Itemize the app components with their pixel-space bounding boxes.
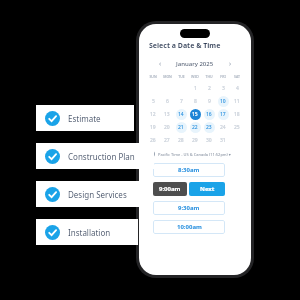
staticText: ‹ <box>159 59 162 69</box>
staticText: 18 <box>234 111 240 118</box>
staticText: Pacific Time - US & Canada (11:52pm) ▾ <box>158 152 231 157</box>
staticText: 26 <box>150 137 156 144</box>
staticText: › <box>229 59 232 69</box>
button[interactable]: 8:30am <box>153 163 225 177</box>
button[interactable]: 17 <box>217 108 229 120</box>
button[interactable]: Previous month <box>155 59 165 69</box>
staticText: 8:30am <box>178 166 200 174</box>
button[interactable]: 30 <box>203 134 215 146</box>
staticText: Construction Plan <box>68 151 135 162</box>
button[interactable]: 22 <box>189 121 201 133</box>
button[interactable]: Estimate <box>36 105 134 131</box>
button[interactable]: 6 <box>161 95 173 107</box>
staticText: 31 <box>220 137 226 144</box>
staticText: 16 <box>206 111 212 118</box>
staticText: January 2025 <box>176 60 214 68</box>
staticText: Select a Date & Time <box>149 41 221 51</box>
staticText: 22 <box>192 124 198 131</box>
button[interactable]: 25 <box>231 121 243 133</box>
staticText: 19 <box>150 124 156 131</box>
staticText: 27 <box>164 137 170 144</box>
staticText: 6 <box>166 98 169 105</box>
staticText: SUN <box>149 74 157 79</box>
staticText: 10:00am <box>177 223 202 231</box>
button[interactable]: Installation <box>36 219 138 245</box>
staticText: 28 <box>178 137 184 144</box>
staticText: 17 <box>220 111 226 118</box>
button[interactable]: 21 <box>175 121 187 133</box>
staticText: 3 <box>222 85 225 92</box>
button[interactable]: 31 <box>217 134 229 146</box>
button[interactable]: 26 <box>147 134 159 146</box>
button[interactable]: 10 <box>217 95 229 107</box>
button[interactable]: 28 <box>175 134 187 146</box>
staticText: 14 <box>178 111 184 118</box>
staticText: 21 <box>178 124 184 131</box>
button[interactable]: 12 <box>147 108 159 120</box>
button[interactable]: 9:00am <box>153 182 187 196</box>
button[interactable]: 10:00am <box>153 220 225 234</box>
staticText: MON <box>163 74 172 79</box>
button[interactable]: 19 <box>147 121 159 133</box>
staticText: 5 <box>152 98 155 105</box>
staticText: TUE <box>178 74 185 79</box>
staticText: 25 <box>234 124 240 131</box>
staticText: Design Services <box>68 189 127 200</box>
button[interactable]: 29 <box>189 134 201 146</box>
button[interactable]: 16 <box>203 108 215 120</box>
staticText: SAT <box>234 74 240 79</box>
button[interactable]: 23 <box>203 121 215 133</box>
button[interactable]: 3 <box>217 82 229 94</box>
staticText: Estimate <box>68 113 101 124</box>
staticText: 20 <box>164 124 170 131</box>
staticText: 8 <box>194 98 197 105</box>
button[interactable]: 13 <box>161 108 173 120</box>
button[interactable]: 9:30am <box>153 201 225 215</box>
staticText: 29 <box>192 137 198 144</box>
staticText: WED <box>191 74 199 79</box>
staticText: 23 <box>206 124 212 131</box>
button[interactable]: 8 <box>189 95 201 107</box>
button[interactable]: 14 <box>175 108 187 120</box>
staticText: 9 <box>208 98 211 105</box>
staticText: 30 <box>206 137 212 144</box>
staticText: 15 <box>192 111 198 118</box>
button[interactable]: Next <box>189 182 225 196</box>
button[interactable]: 18 <box>231 108 243 120</box>
button[interactable]: Construction Plan <box>36 143 154 169</box>
staticText: THU <box>205 74 213 79</box>
button[interactable]: 1 <box>189 82 201 94</box>
staticText: 12 <box>150 111 156 118</box>
staticText: 4 <box>236 85 239 92</box>
staticText: Installation <box>68 227 111 238</box>
button[interactable]: Pacific Time - US & Canada (11:52pm) ▾ <box>149 151 251 157</box>
button[interactable]: 24 <box>217 121 229 133</box>
button[interactable]: 2 <box>203 82 215 94</box>
button[interactable]: 4 <box>231 82 243 94</box>
button[interactable]: 27 <box>161 134 173 146</box>
staticText: 9:00am <box>159 185 181 193</box>
button[interactable]: 15 <box>189 108 201 120</box>
staticText: 24 <box>220 124 226 131</box>
staticText: 1 <box>194 85 197 92</box>
button[interactable]: 11 <box>231 95 243 107</box>
button[interactable]: 5 <box>147 95 159 107</box>
staticText: 13 <box>164 111 170 118</box>
staticText: 7 <box>180 98 183 105</box>
button[interactable]: Design Services <box>36 181 144 207</box>
staticText: 11 <box>234 98 240 105</box>
staticText: 9:30am <box>178 204 200 212</box>
button[interactable]: 20 <box>161 121 173 133</box>
staticText: 2 <box>208 85 211 92</box>
staticText: 10 <box>220 98 226 105</box>
button[interactable]: 9 <box>203 95 215 107</box>
button[interactable]: 7 <box>175 95 187 107</box>
staticText: FRI <box>220 74 226 79</box>
staticText: Next <box>200 185 215 193</box>
button[interactable]: Next month <box>225 59 235 69</box>
